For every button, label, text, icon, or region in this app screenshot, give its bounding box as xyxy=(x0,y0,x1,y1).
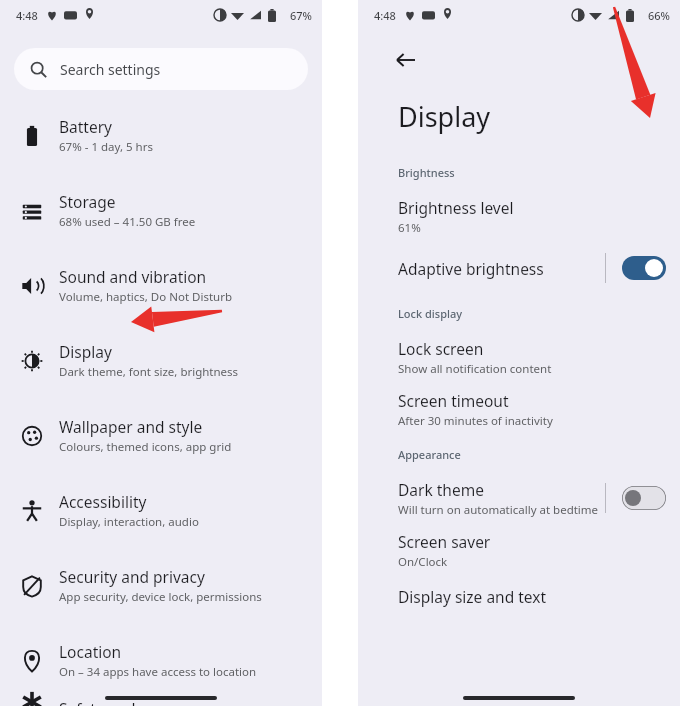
staticText: After 30 minutes of inactivity xyxy=(398,413,553,429)
staticText: Dark theme xyxy=(398,479,484,500)
button[interactable]: Lock screen xyxy=(358,331,680,383)
button[interactable]: Wallpaper and style xyxy=(0,398,322,473)
button[interactable]: Location xyxy=(0,623,322,698)
button[interactable]: Security and privacy xyxy=(0,548,322,623)
staticText: Show all notification content xyxy=(398,361,552,377)
staticText: 4:48 xyxy=(374,8,396,23)
staticText: 66% xyxy=(648,8,670,23)
staticText: Battery xyxy=(59,116,113,137)
button[interactable]: Dark theme xyxy=(622,486,666,510)
button[interactable]: Screen timeout xyxy=(358,383,680,435)
button[interactable]: Search settings xyxy=(14,48,308,90)
button[interactable]: Storage xyxy=(0,173,322,248)
staticText: Adaptive brightness xyxy=(398,258,544,279)
staticText: Accessibility xyxy=(59,491,147,512)
staticText: Colours, themed icons, app grid xyxy=(59,439,232,455)
button[interactable]: Battery xyxy=(0,98,322,173)
button[interactable]: Back xyxy=(390,44,422,76)
staticText: Volume, haptics, Do Not Disturb xyxy=(59,289,232,305)
staticText: Sound and vibration xyxy=(59,266,207,287)
staticText: Security and privacy xyxy=(59,566,205,587)
staticText: Display, interaction, audio xyxy=(59,514,199,530)
button[interactable]: Adaptive brightness xyxy=(622,256,666,280)
staticText: 68% used – 41.50 GB free xyxy=(59,214,196,230)
staticText: Will turn on automatically at bedtime xyxy=(398,502,599,518)
staticText: 67% - 1 day, 5 hrs xyxy=(59,139,153,155)
staticText: Location xyxy=(59,641,122,662)
button[interactable]: Accessibility xyxy=(0,473,322,548)
button[interactable]: Sound and vibration xyxy=(0,248,322,323)
button[interactable]: Display size and text xyxy=(358,576,680,616)
button[interactable]: Display xyxy=(0,323,322,398)
staticText: 61% xyxy=(398,220,421,236)
button[interactable]: Brightness level xyxy=(358,190,680,242)
button[interactable]: Screen saver xyxy=(358,524,680,576)
staticText: Lock display xyxy=(398,306,463,321)
staticText: Display xyxy=(398,98,491,135)
staticText: Display size and text xyxy=(398,586,547,607)
staticText: Screen timeout xyxy=(398,390,509,411)
staticText: Lock screen xyxy=(398,338,484,359)
staticText: Brightness xyxy=(398,165,455,180)
staticText: Safety and emergency xyxy=(59,698,222,706)
staticText: On – 34 apps have access to location xyxy=(59,664,257,680)
button[interactable]: Safety and emergency xyxy=(0,698,322,706)
button[interactable]: Dark theme xyxy=(358,472,680,524)
staticText: Dark theme, font size, brightness xyxy=(59,364,239,380)
staticText: Display xyxy=(59,341,112,362)
staticText: Screen saver xyxy=(398,531,491,552)
staticText: Storage xyxy=(59,191,116,212)
staticText: App security, device lock, permissions xyxy=(59,589,262,605)
staticText: On/Clock xyxy=(398,554,448,570)
staticText: Brightness level xyxy=(398,197,514,218)
staticText: Appearance xyxy=(398,447,461,462)
staticText: Wallpaper and style xyxy=(59,416,203,437)
staticText: Search settings xyxy=(60,60,161,79)
staticText: 67% xyxy=(290,8,312,23)
button[interactable]: Adaptive brightness xyxy=(358,242,680,294)
staticText: 4:48 xyxy=(16,8,38,23)
